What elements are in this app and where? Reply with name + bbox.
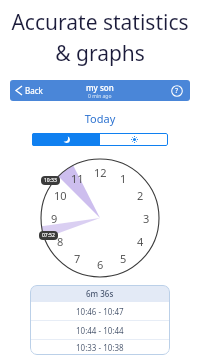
staticText: & graphs [0,39,200,68]
staticText: Back [25,85,43,96]
staticText: 9 [51,211,58,226]
staticText: ? [175,86,179,96]
staticText: 0 min ago [88,93,112,100]
staticText: 4 [137,234,144,249]
staticText: 5 [120,251,127,266]
staticText: 2 [137,188,144,203]
staticText: 7 [74,251,81,266]
button[interactable]: 10:46 - 10:47 [30,302,170,321]
staticText: 1 [120,171,127,186]
staticText: 07:52 [42,232,55,239]
staticText: 10:44 - 10:44 [76,325,124,336]
button[interactable]: Help [164,80,190,101]
button[interactable]: Back [10,80,51,101]
staticText: 6m 36s [86,288,114,299]
staticText: 3 [143,211,150,226]
button[interactable]: Night [32,133,100,146]
staticText: my son [86,82,114,93]
staticText: 12 [94,165,107,180]
staticText: 8 [57,234,64,249]
staticText: 11 [71,171,84,186]
staticText: 6 [97,257,104,272]
button[interactable]: 10:44 - 10:44 [30,321,170,340]
button[interactable]: 10:33 - 10:38 [30,340,170,355]
staticText: 10:33 - 10:38 [76,342,124,353]
staticText: Today [0,111,200,126]
staticText: 10:46 - 10:47 [76,306,124,317]
button[interactable]: Day [100,133,168,146]
staticText: Accurate statistics [0,8,200,37]
staticText: 10 [54,188,67,203]
staticText: 10:33 [44,177,57,184]
